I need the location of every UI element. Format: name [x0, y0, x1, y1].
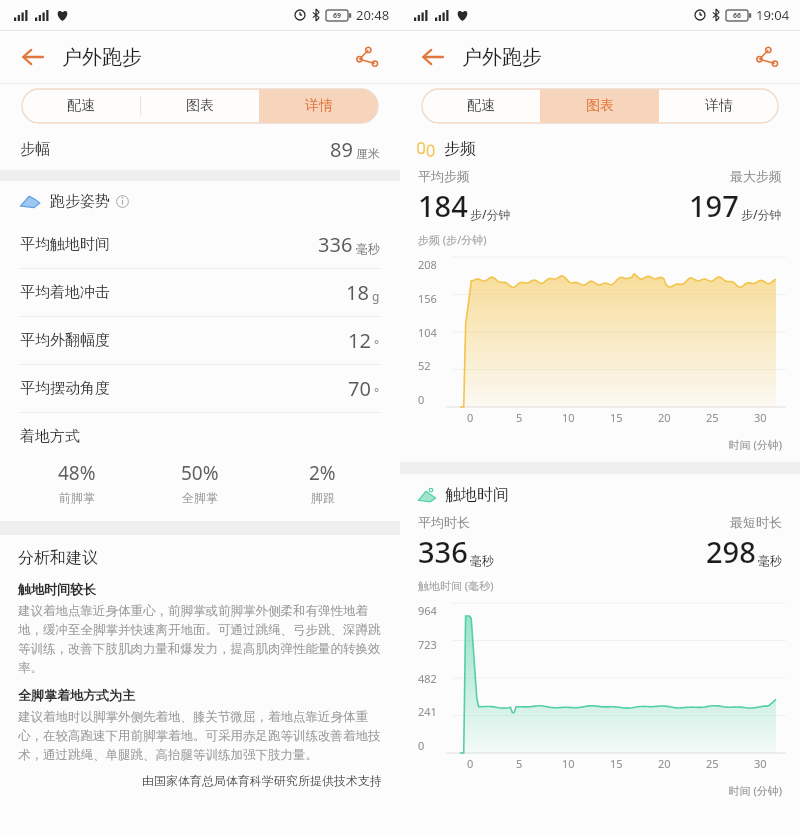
staticText: 2% — [309, 460, 336, 486]
staticText: 由国家体育总局体育科学研究所提供技术支持 — [18, 773, 382, 788]
staticText: 厘米 — [356, 146, 380, 161]
staticText: g — [372, 288, 380, 304]
staticText: 平均摆动角度 — [20, 379, 110, 398]
staticText: 跑步姿势 — [50, 192, 110, 211]
staticText: 步频 — [444, 139, 476, 159]
staticText: 0 — [418, 738, 425, 753]
staticText: 241 — [418, 704, 437, 719]
button[interactable]: 详情 — [659, 89, 778, 123]
button[interactable]: 平均摆动角度 — [20, 365, 380, 412]
staticText: 步幅 — [20, 140, 50, 159]
button[interactable]: 详情 — [259, 89, 378, 123]
staticText: 户外跑步 — [62, 45, 142, 70]
staticText: 197 — [689, 186, 739, 225]
staticText: 图表 — [586, 97, 614, 115]
staticText: 建议着地点靠近身体重心，前脚掌或前脚掌外侧柔和有弹性地着地，缓冲至全脚掌并快速离… — [18, 603, 382, 676]
staticText: 时间 (分钟) — [400, 437, 782, 452]
staticText: 着地方式 — [20, 427, 80, 446]
staticText: 步/分钟 — [741, 206, 782, 222]
staticText: 触地时间 — [445, 485, 509, 505]
staticText: 建议着地时以脚掌外侧先着地、膝关节微屈，着地点靠近身体重心，在较高跑速下用前脚掌… — [18, 709, 382, 763]
staticText: 66 — [733, 11, 742, 21]
staticText: 步频 (步/分钟) — [418, 232, 487, 247]
staticText: 964 — [418, 603, 437, 618]
staticText: 最大步频 — [730, 168, 782, 184]
staticText: 平均触地时间 — [20, 235, 110, 254]
staticText: 19:04 — [756, 6, 790, 24]
staticText: 482 — [418, 671, 437, 686]
staticText: 详情 — [305, 97, 333, 115]
staticText: 0 — [467, 410, 474, 425]
button[interactable]: 配速 — [422, 89, 540, 123]
staticText: 触地时间较长 — [18, 581, 96, 597]
staticText: 平均时长 — [418, 514, 470, 530]
button[interactable]: Back — [418, 42, 448, 72]
staticText: 15 — [610, 410, 623, 425]
staticText: 平均着地冲击 — [20, 283, 110, 302]
button[interactable]: 平均着地冲击 — [20, 269, 380, 316]
button[interactable]: 图表 — [540, 89, 659, 123]
staticText: ° — [374, 336, 380, 352]
staticText: 336 — [418, 532, 468, 571]
staticText: 图表 — [186, 97, 214, 115]
staticText: 分析和建议 — [18, 548, 98, 568]
button[interactable]: 步幅 — [20, 128, 380, 170]
staticText: 12 — [348, 327, 371, 354]
staticText: 平均外翻幅度 — [20, 331, 110, 350]
staticText: 52 — [418, 358, 431, 373]
staticText: 20:48 — [356, 6, 390, 24]
staticText: ° — [374, 384, 380, 400]
staticText: 298 — [706, 532, 756, 571]
staticText: 208 — [418, 257, 437, 272]
staticText: 48% — [58, 460, 96, 486]
button[interactable]: Back — [18, 42, 48, 72]
staticText: 25 — [706, 756, 719, 771]
staticText: 全脚掌 — [182, 490, 218, 505]
staticText: 前脚掌 — [59, 490, 95, 505]
staticText: 0 — [418, 392, 425, 407]
staticText: 15 — [610, 756, 623, 771]
staticText: 全脚掌着地方式为主 — [18, 687, 135, 703]
staticText: 20 — [658, 410, 671, 425]
staticText: 毫秒 — [356, 241, 380, 256]
staticText: 配速 — [67, 97, 95, 115]
staticText: 触地时间 (毫秒) — [418, 578, 494, 593]
staticText: 184 — [418, 186, 468, 225]
button[interactable]: 平均触地时间 — [20, 221, 380, 268]
staticText: 平均步频 — [418, 168, 470, 184]
staticText: 30 — [754, 756, 767, 771]
button[interactable]: 图表 — [140, 89, 259, 123]
staticText: 723 — [418, 637, 437, 652]
button[interactable]: 平均外翻幅度 — [20, 317, 380, 364]
staticText: 详情 — [705, 97, 733, 115]
staticText: 毫秒 — [470, 553, 494, 568]
staticText: 0 — [467, 756, 474, 771]
staticText: 30 — [754, 410, 767, 425]
staticText: 18 — [346, 279, 369, 306]
staticText: 5 — [516, 756, 523, 771]
staticText: 5 — [516, 410, 523, 425]
staticText: 10 — [562, 410, 575, 425]
button[interactable]: Share — [352, 42, 382, 72]
staticText: 69 — [333, 11, 342, 21]
staticText: 104 — [418, 325, 437, 340]
staticText: 156 — [418, 291, 437, 306]
staticText: 70 — [348, 375, 371, 402]
staticText: 脚跟 — [311, 490, 335, 505]
staticText: 20 — [658, 756, 671, 771]
staticText: 89 — [330, 136, 353, 163]
staticText: 336 — [318, 231, 353, 258]
staticText: 25 — [706, 410, 719, 425]
staticText: 毫秒 — [758, 553, 782, 568]
staticText: 配速 — [467, 97, 495, 115]
button[interactable]: 配速 — [22, 89, 140, 123]
staticText: 50% — [181, 460, 219, 486]
staticText: 户外跑步 — [462, 45, 542, 70]
button[interactable]: Share — [752, 42, 782, 72]
staticText: 最短时长 — [730, 514, 782, 530]
staticText: 10 — [562, 756, 575, 771]
staticText: 时间 (分钟) — [400, 783, 782, 798]
staticText: 步/分钟 — [470, 206, 511, 222]
